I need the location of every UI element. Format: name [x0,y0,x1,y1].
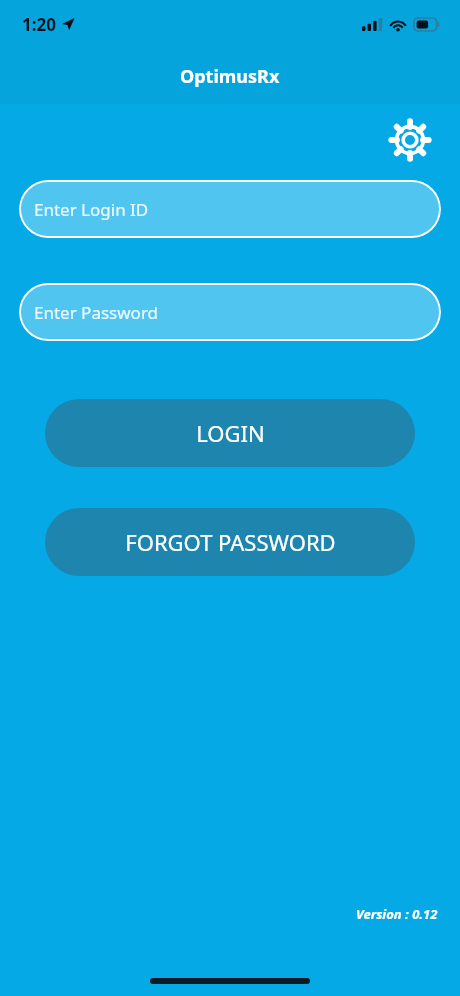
staticText: Version : 0.12 [356,905,438,923]
button[interactable]: FORGOT PASSWORD [45,508,415,576]
staticText: FORGOT PASSWORD [125,527,336,557]
staticText: 1:20 [22,13,56,36]
button[interactable]: LOGIN [45,399,415,467]
button[interactable]: Enter Login ID [19,180,441,238]
button[interactable]: Enter Password [19,283,441,341]
staticText: Enter Password [34,301,159,324]
staticText: OptimusRx [180,64,280,89]
staticText: LOGIN [196,418,265,448]
staticText: Enter Login ID [34,198,149,221]
button[interactable]: Settings [387,117,433,163]
